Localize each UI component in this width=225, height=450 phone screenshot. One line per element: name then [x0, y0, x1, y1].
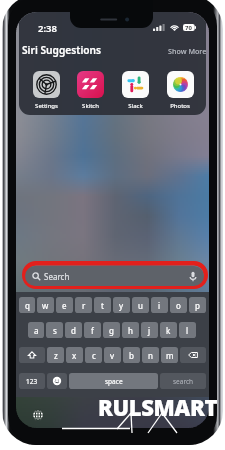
staticText: r [82, 300, 86, 311]
button[interactable]: i [151, 297, 168, 313]
button[interactable]: e [56, 297, 73, 313]
staticText: k [166, 325, 171, 336]
button[interactable]: l [179, 322, 196, 338]
staticText: b [129, 350, 134, 361]
button[interactable]: b [123, 347, 140, 363]
button[interactable]: u [132, 297, 149, 313]
button[interactable]: x [66, 347, 83, 363]
staticText: u [138, 300, 143, 311]
staticText: search [173, 377, 194, 386]
staticText: g [109, 325, 114, 336]
staticText: 123 [26, 377, 38, 386]
staticText: RULSMART [98, 392, 217, 422]
staticText: s [53, 325, 57, 336]
button[interactable]: Slack [113, 71, 157, 110]
staticText: q [25, 300, 30, 311]
staticText: Settings [35, 102, 58, 110]
staticText: o [176, 300, 181, 311]
staticText: a [34, 325, 39, 336]
button[interactable]: Emoji [47, 373, 67, 389]
button[interactable]: space [69, 373, 158, 389]
staticText: p [195, 300, 200, 311]
button[interactable]: g [103, 322, 120, 338]
other: Voice search [189, 271, 197, 282]
button[interactable]: d [65, 322, 82, 338]
button[interactable]: Shift [19, 347, 45, 363]
other: Change keyboard [32, 409, 44, 421]
button[interactable]: t [94, 297, 111, 313]
button[interactable]: s [46, 322, 63, 338]
button[interactable]: k [160, 322, 177, 338]
button[interactable]: p [189, 297, 206, 313]
button[interactable]: Backspace [180, 347, 206, 363]
button[interactable]: Photos [158, 71, 202, 110]
button[interactable]: h [122, 322, 139, 338]
button[interactable]: z [47, 347, 64, 363]
staticText: i [158, 300, 161, 311]
button[interactable]: Settings [24, 71, 68, 110]
button[interactable]: m [161, 347, 178, 363]
staticText: 2:38 [38, 22, 57, 35]
staticText: m [166, 350, 174, 361]
staticText: l [186, 325, 189, 336]
button[interactable]: w [37, 297, 54, 313]
staticText: h [128, 325, 133, 336]
button[interactable]: j [141, 322, 158, 338]
button[interactable]: 123 [19, 373, 45, 389]
staticText: space [105, 377, 123, 386]
button[interactable]: Search [25, 266, 204, 286]
button[interactable]: Show More [168, 46, 207, 56]
button[interactable]: r [75, 297, 92, 313]
staticText: e [62, 300, 67, 311]
staticText: d [71, 325, 76, 336]
button[interactable]: y [113, 297, 130, 313]
staticText: y [119, 300, 124, 311]
staticText: Search [44, 271, 70, 282]
button[interactable]: c [85, 347, 102, 363]
staticText: f [91, 325, 94, 336]
staticText: n [148, 350, 153, 361]
staticText: x [72, 350, 77, 361]
staticText: Siri Suggestions [22, 43, 102, 57]
staticText: c [92, 350, 96, 361]
button[interactable]: search [160, 373, 206, 389]
staticText: z [54, 350, 58, 361]
staticText: w [42, 300, 49, 311]
staticText: v [110, 350, 115, 361]
staticText: Photos [170, 102, 190, 110]
button[interactable]: q [19, 297, 35, 313]
staticText: 70 [185, 24, 192, 31]
staticText: j [148, 325, 151, 336]
button[interactable]: v [104, 347, 121, 363]
button[interactable]: o [170, 297, 187, 313]
button[interactable]: Skitch [68, 71, 112, 110]
staticText: Skitch [82, 102, 99, 110]
button[interactable]: n [142, 347, 159, 363]
button[interactable]: a [28, 322, 44, 338]
staticText: t [101, 300, 104, 311]
button[interactable]: f [84, 322, 101, 338]
staticText: Slack [128, 102, 143, 110]
